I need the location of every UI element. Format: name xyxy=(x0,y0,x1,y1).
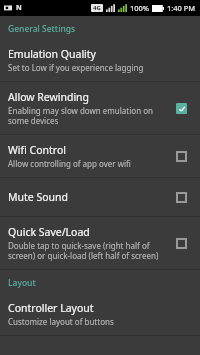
staticText: N xyxy=(16,3,22,13)
button[interactable]: Emulation Quality xyxy=(0,39,200,81)
staticText: Wifi Control xyxy=(8,143,66,157)
staticText: 1:40 PM xyxy=(167,3,196,13)
staticText: Layout xyxy=(8,277,36,289)
staticText: 4G xyxy=(93,4,101,12)
staticText: Customize layout of buttons xyxy=(8,316,114,327)
button[interactable]: Quick Save/Load xyxy=(0,217,200,269)
staticText: Allow Rewinding xyxy=(8,90,90,104)
staticText: Set to Low if you experience lagging xyxy=(8,62,144,73)
staticText: Allow controlling of app over wifi xyxy=(8,158,131,169)
button[interactable]: Mute Sound xyxy=(0,178,200,216)
button[interactable]: Allow Rewinding xyxy=(0,82,200,134)
staticText: Enabling may slow down emulation on some… xyxy=(8,105,164,126)
staticText: General Settings xyxy=(8,23,76,35)
staticText: Mute Sound xyxy=(8,190,69,204)
staticText: 100% xyxy=(130,3,150,13)
button[interactable]: Wifi Control xyxy=(0,135,200,177)
staticText: Double tap to quick-save (right half of … xyxy=(8,240,164,261)
button[interactable]: Allow Rewinding xyxy=(170,97,192,119)
button[interactable]: Wifi Control xyxy=(170,145,192,167)
staticText: Controller Layout xyxy=(8,301,94,315)
staticText: Emulation Quality xyxy=(8,47,96,61)
staticText: Quick Save/Load xyxy=(8,225,90,239)
button[interactable]: Quick Save/Load xyxy=(170,232,192,254)
button[interactable]: Mute Sound xyxy=(170,186,192,208)
button[interactable]: Controller Layout xyxy=(0,293,200,335)
